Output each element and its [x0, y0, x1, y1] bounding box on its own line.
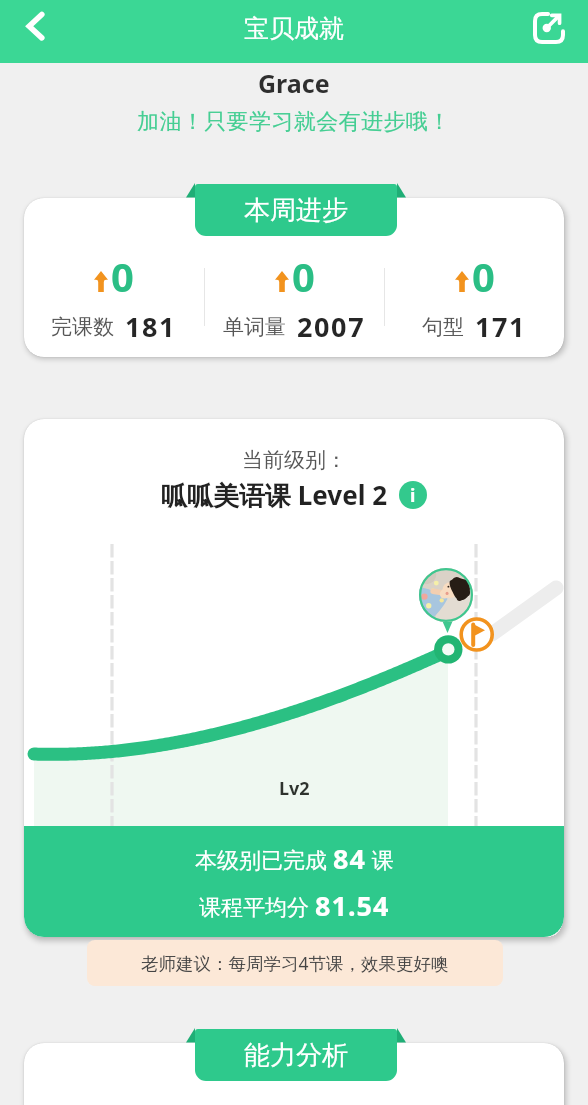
staticText: 本周进步 — [244, 194, 348, 227]
staticText: 呱呱美语课 Level 2 — [161, 477, 388, 513]
staticText: 宝贝成就 — [244, 13, 344, 44]
staticText: 本级别已完成 — [195, 844, 333, 874]
staticText: 0 — [292, 249, 315, 303]
staticText: 加油！只要学习就会有进步哦！ — [137, 108, 451, 136]
staticText: Grace — [258, 66, 330, 100]
staticText: 单词量 — [223, 314, 286, 340]
staticText: 课 — [366, 844, 394, 874]
button[interactable]: Level info — [399, 481, 427, 509]
staticText: 84 — [333, 840, 366, 877]
staticText: 81.54 — [315, 887, 390, 924]
staticText: i — [410, 483, 416, 508]
staticText: 能力分析 — [244, 1039, 348, 1072]
staticText: 2007 — [297, 308, 366, 345]
staticText: 0 — [111, 249, 134, 303]
button[interactable]: Back — [7, 0, 63, 56]
staticText: 句型 — [422, 314, 464, 340]
staticText: Lv2 — [279, 776, 310, 801]
staticText: 171 — [475, 308, 527, 345]
staticText: 完课数 — [51, 314, 114, 340]
staticText: 当前级别： — [242, 447, 347, 473]
staticText: 181 — [125, 308, 177, 345]
staticText: 老师建议：每周学习4节课，效果更好噢 — [141, 951, 449, 975]
staticText: 0 — [472, 249, 495, 303]
staticText: 课程平均分 — [199, 891, 315, 921]
button[interactable]: Share — [521, 0, 577, 56]
button[interactable]: 能力分析 — [195, 1029, 397, 1081]
button[interactable]: 本周进步 — [195, 184, 397, 236]
